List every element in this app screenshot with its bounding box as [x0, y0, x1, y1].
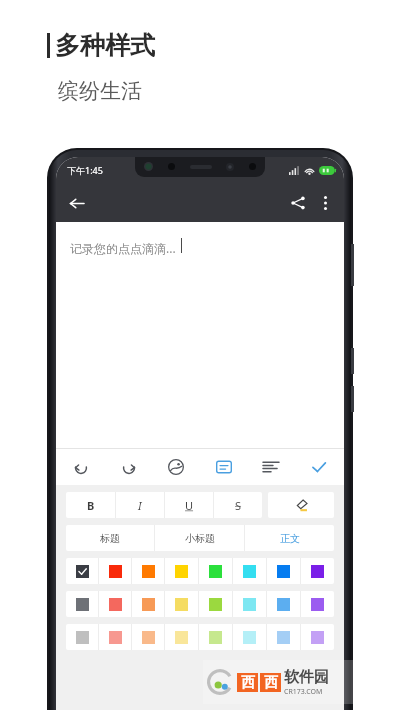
button[interactable]: Align [256, 452, 286, 482]
button[interactable]: B [66, 492, 115, 518]
staticText: 下午1:45 [67, 164, 103, 176]
button[interactable]: Colour 3 [132, 558, 164, 584]
button[interactable]: I [116, 492, 164, 518]
button[interactable]: Colour 6 [233, 558, 266, 584]
button[interactable]: Colour 1 [66, 591, 98, 617]
button[interactable]: Colour 4 [165, 624, 198, 650]
button[interactable]: Colour 7 [267, 591, 300, 617]
staticText: I [138, 498, 142, 513]
button[interactable]: Back [63, 190, 89, 216]
button[interactable]: Colour 7 [267, 558, 300, 584]
button[interactable]: Colour 7 [267, 624, 300, 650]
button[interactable]: Highlighter [268, 492, 334, 518]
button[interactable]: More options [312, 190, 338, 216]
staticText: 记录您的点点滴滴... [70, 240, 176, 256]
staticText: U [185, 498, 194, 513]
button[interactable]: Done [304, 452, 334, 482]
button[interactable]: Redo [114, 452, 144, 482]
staticText: 多种样式 [55, 30, 155, 61]
staticText: 西 [241, 674, 255, 692]
button[interactable]: U [165, 492, 213, 518]
button[interactable]: Colour 3 [132, 624, 164, 650]
button[interactable]: Colour 2 [99, 591, 131, 617]
button[interactable]: Colour 5 [199, 624, 232, 650]
staticText: 小标题 [185, 532, 215, 545]
staticText: 缤纷生活 [58, 78, 142, 104]
button[interactable]: Colour 1 [66, 558, 98, 584]
button[interactable]: 小标题 [155, 525, 244, 551]
button[interactable]: Colour 8 [301, 591, 334, 617]
button[interactable]: Colour 5 [199, 591, 232, 617]
staticText: S [235, 498, 242, 513]
staticText: CR173.COM [284, 687, 323, 697]
button[interactable]: Undo [66, 452, 96, 482]
button[interactable]: Colour 4 [165, 591, 198, 617]
staticText: 软件园 [284, 668, 329, 687]
button[interactable]: Colour 6 [233, 624, 266, 650]
button[interactable]: 标题 [66, 525, 154, 551]
button[interactable]: Colour 3 [132, 591, 164, 617]
button[interactable]: Text style [209, 452, 239, 482]
button[interactable]: Share [284, 189, 312, 217]
staticText: 标题 [100, 532, 120, 545]
button[interactable]: S [214, 492, 262, 518]
button[interactable]: Insert image [161, 452, 191, 482]
button[interactable]: Colour 4 [165, 558, 198, 584]
button[interactable]: 正文 [245, 525, 334, 551]
button[interactable]: Colour 8 [301, 558, 334, 584]
staticText: B [87, 498, 95, 513]
button[interactable]: Colour 6 [233, 591, 266, 617]
staticText: 西 [264, 674, 278, 692]
button[interactable]: Colour 8 [301, 624, 334, 650]
button[interactable]: Colour 2 [99, 624, 131, 650]
button[interactable]: Colour 1 [66, 624, 98, 650]
button[interactable]: Colour 2 [99, 558, 131, 584]
staticText: 正文 [280, 532, 300, 545]
button[interactable]: Colour 5 [199, 558, 232, 584]
